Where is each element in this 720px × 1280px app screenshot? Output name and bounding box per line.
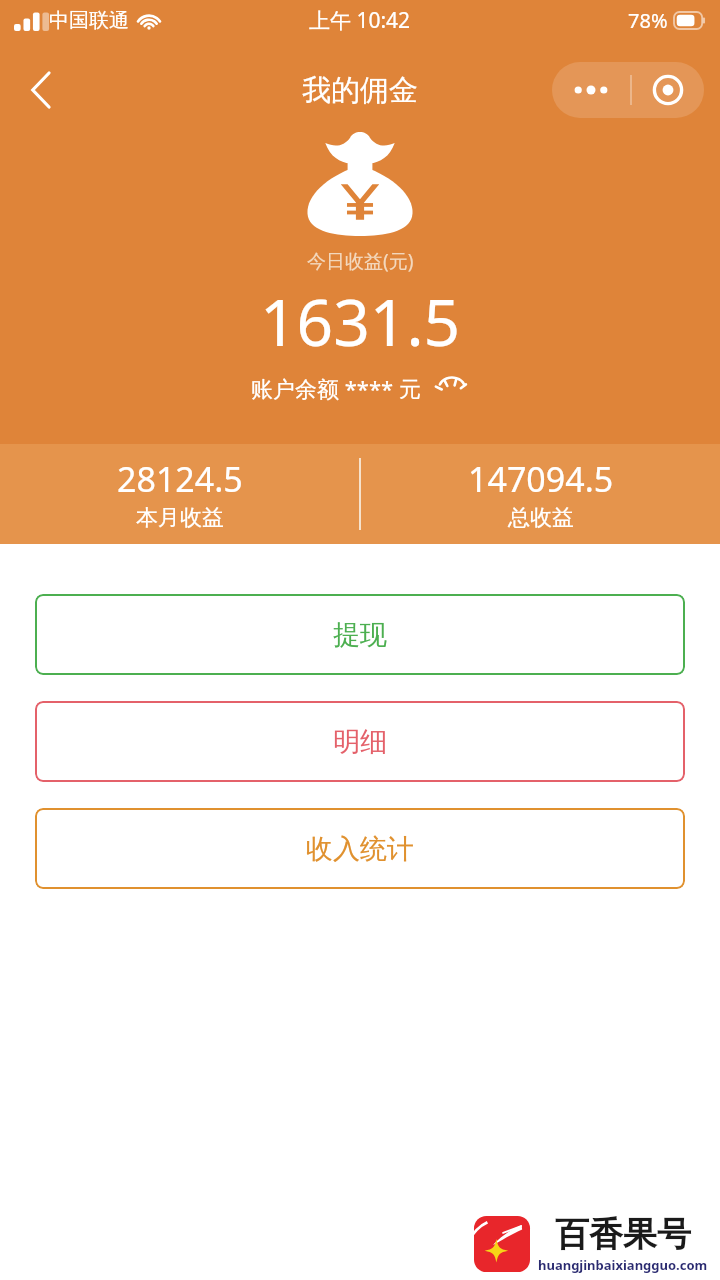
- staticText: 147094.5: [468, 456, 614, 502]
- button[interactable]: 提现: [35, 594, 685, 675]
- staticText: 1631.5: [260, 278, 461, 365]
- button[interactable]: 明细: [35, 701, 685, 782]
- staticText: 账户余额 **** 元: [251, 373, 421, 403]
- staticText: 中国联通: [49, 8, 129, 33]
- staticText: 今日收益(元): [307, 248, 414, 274]
- button[interactable]: 收入统计: [35, 808, 685, 889]
- button[interactable]: Back: [16, 64, 68, 116]
- staticText: 上午 10:42: [309, 6, 411, 35]
- staticText: 28124.5: [117, 456, 243, 502]
- staticText: 我的佣金: [302, 72, 418, 109]
- staticText: 百香果号: [555, 1213, 691, 1256]
- button[interactable]: More options: [552, 62, 704, 118]
- staticText: 收入统计: [306, 832, 414, 866]
- button[interactable]: Show balance: [435, 375, 469, 401]
- staticText: 明细: [333, 725, 387, 759]
- staticText: 本月收益: [136, 504, 224, 532]
- staticText: huangjinbaixiangguo.com: [538, 1256, 708, 1274]
- staticText: 78%: [628, 7, 668, 34]
- staticText: 总收益: [508, 504, 574, 532]
- staticText: 提现: [333, 618, 387, 652]
